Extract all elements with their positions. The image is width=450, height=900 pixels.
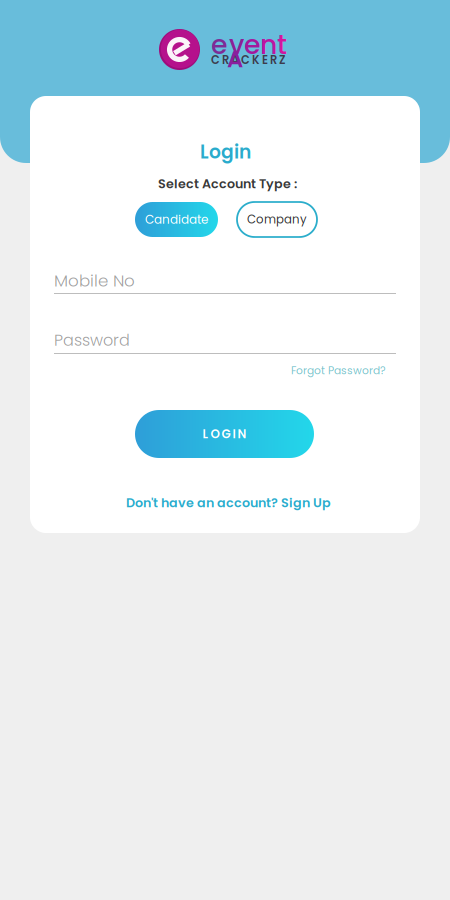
button[interactable]: L O G I N [135, 410, 314, 458]
staticText: Company [247, 211, 307, 228]
staticText: Login [200, 139, 251, 165]
staticText: Candidate [145, 211, 208, 228]
button[interactable]: Candidate [135, 202, 218, 237]
staticText: Don't have an account? Sign Up [126, 494, 331, 512]
button[interactable]: Company [237, 202, 317, 237]
staticText: n [260, 26, 277, 63]
button[interactable]: Forgot Password? [291, 363, 386, 378]
staticText: A [227, 43, 243, 75]
staticText: e [211, 26, 227, 63]
staticText: C R A C K E R Z [211, 52, 286, 68]
staticText: e [244, 26, 260, 63]
staticText: v [229, 26, 244, 63]
staticText: t [277, 26, 287, 63]
button[interactable]: Don't have an account? Sign Up [126, 494, 331, 512]
staticText: Select Account Type : [158, 175, 297, 193]
staticText: L O G I N [202, 426, 246, 442]
staticText: Password [54, 329, 130, 351]
staticText: Forgot Password? [291, 363, 386, 378]
staticText: Mobile No [54, 269, 135, 292]
